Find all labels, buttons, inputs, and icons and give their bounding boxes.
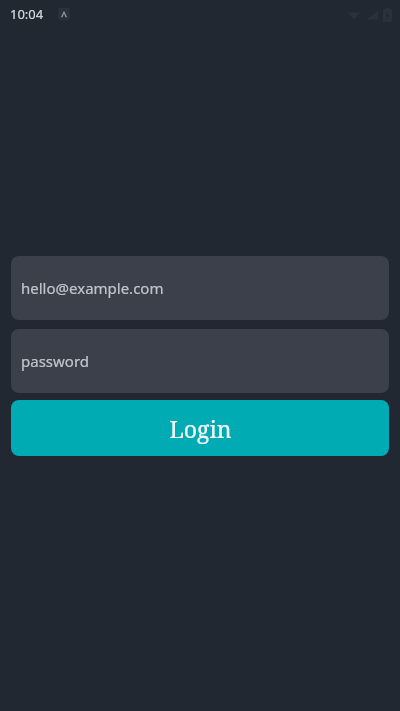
staticText: hello@example.com [21, 278, 164, 298]
button[interactable]: password [11, 329, 389, 393]
staticText: Login [169, 413, 232, 444]
other: Battery charging [383, 7, 392, 22]
button[interactable]: Login [11, 400, 389, 456]
staticText: password [21, 351, 89, 371]
other: Mobile signal [365, 8, 379, 22]
other: Notification [58, 8, 70, 20]
staticText: 10:04 [10, 5, 44, 23]
other: Wi-Fi [347, 8, 361, 22]
button[interactable]: hello@example.com [11, 256, 389, 320]
